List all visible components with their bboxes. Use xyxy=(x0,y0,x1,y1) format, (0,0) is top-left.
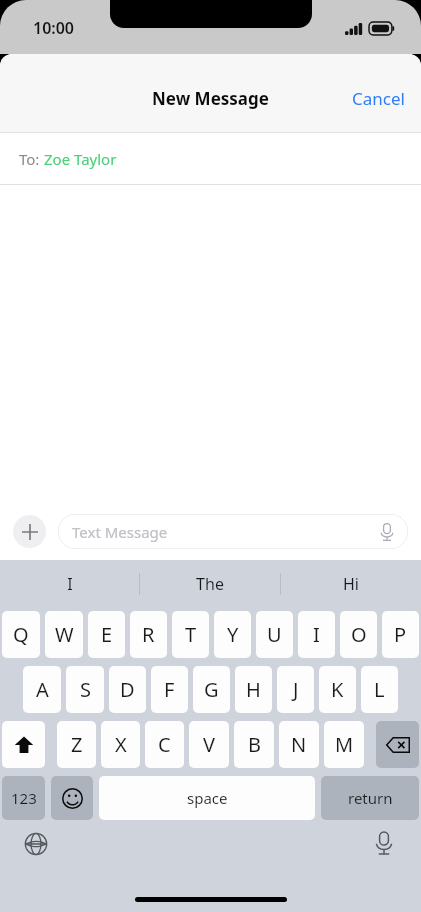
button[interactable]: N xyxy=(279,721,319,768)
staticText: 10:00 xyxy=(33,17,75,39)
button[interactable]: C xyxy=(145,721,184,768)
button[interactable]: Dictation xyxy=(371,830,397,856)
staticText: N xyxy=(291,731,307,758)
button[interactable]: Add attachment xyxy=(13,515,46,548)
staticText: return xyxy=(348,788,393,808)
button[interactable]: space xyxy=(99,776,315,820)
button[interactable]: P xyxy=(382,611,419,658)
button[interactable]: V xyxy=(189,721,229,768)
staticText: space xyxy=(187,788,228,808)
staticText: R xyxy=(142,621,155,648)
button[interactable]: Y xyxy=(214,611,251,658)
staticText: H xyxy=(246,676,261,703)
staticText: W xyxy=(55,621,74,648)
staticText: New Message xyxy=(152,87,269,110)
button[interactable]: return xyxy=(321,776,419,820)
staticText: Y xyxy=(227,621,239,648)
button[interactable]: E xyxy=(88,611,125,658)
button[interactable]: 123 xyxy=(2,776,45,820)
staticText: A xyxy=(36,676,49,703)
button[interactable]: To: xyxy=(0,133,421,185)
button[interactable]: Backspace xyxy=(376,721,419,768)
button[interactable]: I xyxy=(0,560,139,607)
staticText: Hi xyxy=(343,573,359,595)
staticText: J xyxy=(293,676,299,703)
button[interactable]: Text Message xyxy=(58,514,408,549)
button[interactable]: The xyxy=(140,560,280,607)
staticText: Cancel xyxy=(352,87,405,110)
staticText: B xyxy=(248,731,261,758)
button[interactable]: Dictate xyxy=(377,522,397,542)
staticText: E xyxy=(101,621,113,648)
button[interactable]: F xyxy=(151,666,188,713)
button[interactable]: U xyxy=(256,611,293,658)
staticText: I xyxy=(67,573,73,595)
button[interactable]: S xyxy=(66,666,104,713)
button[interactable]: D xyxy=(109,666,146,713)
button[interactable]: B xyxy=(234,721,274,768)
button[interactable]: H xyxy=(235,666,272,713)
staticText: Zoe Taylor xyxy=(44,149,117,169)
button[interactable]: Q xyxy=(2,611,40,658)
button[interactable]: G xyxy=(193,666,230,713)
staticText: P xyxy=(394,621,407,648)
button[interactable]: Z xyxy=(57,721,96,768)
staticText: C xyxy=(158,731,171,758)
button[interactable]: W xyxy=(45,611,83,658)
button[interactable]: R xyxy=(130,611,167,658)
button[interactable]: Cancel xyxy=(336,79,421,118)
staticText: F xyxy=(164,676,175,703)
button[interactable]: I xyxy=(298,611,335,658)
button[interactable]: Switch keyboard xyxy=(22,830,50,858)
staticText: I xyxy=(313,621,320,648)
button[interactable]: X xyxy=(101,721,140,768)
staticText: S xyxy=(80,676,91,703)
staticText: D xyxy=(120,676,135,703)
staticText: G xyxy=(204,676,219,703)
staticText: M xyxy=(335,731,354,758)
staticText: U xyxy=(267,621,282,648)
button[interactable]: Emoji xyxy=(51,776,93,820)
staticText: O xyxy=(351,621,367,648)
staticText: K xyxy=(331,676,344,703)
staticText: Z xyxy=(71,731,83,758)
staticText: Text Message xyxy=(72,522,168,542)
button[interactable]: Hi xyxy=(281,560,421,607)
button[interactable]: M xyxy=(324,721,364,768)
button[interactable]: K xyxy=(319,666,356,713)
button[interactable]: L xyxy=(361,666,398,713)
button[interactable]: J xyxy=(277,666,314,713)
staticText: X xyxy=(115,731,127,758)
staticText: V xyxy=(203,731,215,758)
button[interactable]: O xyxy=(340,611,377,658)
staticText: To: xyxy=(19,149,44,169)
staticText: T xyxy=(185,621,197,648)
button[interactable]: T xyxy=(172,611,209,658)
staticText: The xyxy=(196,573,224,595)
staticText: L xyxy=(374,676,385,703)
staticText: 123 xyxy=(11,788,37,808)
button[interactable]: A xyxy=(23,666,61,713)
button[interactable]: Shift xyxy=(2,721,45,768)
staticText: Q xyxy=(13,621,29,648)
